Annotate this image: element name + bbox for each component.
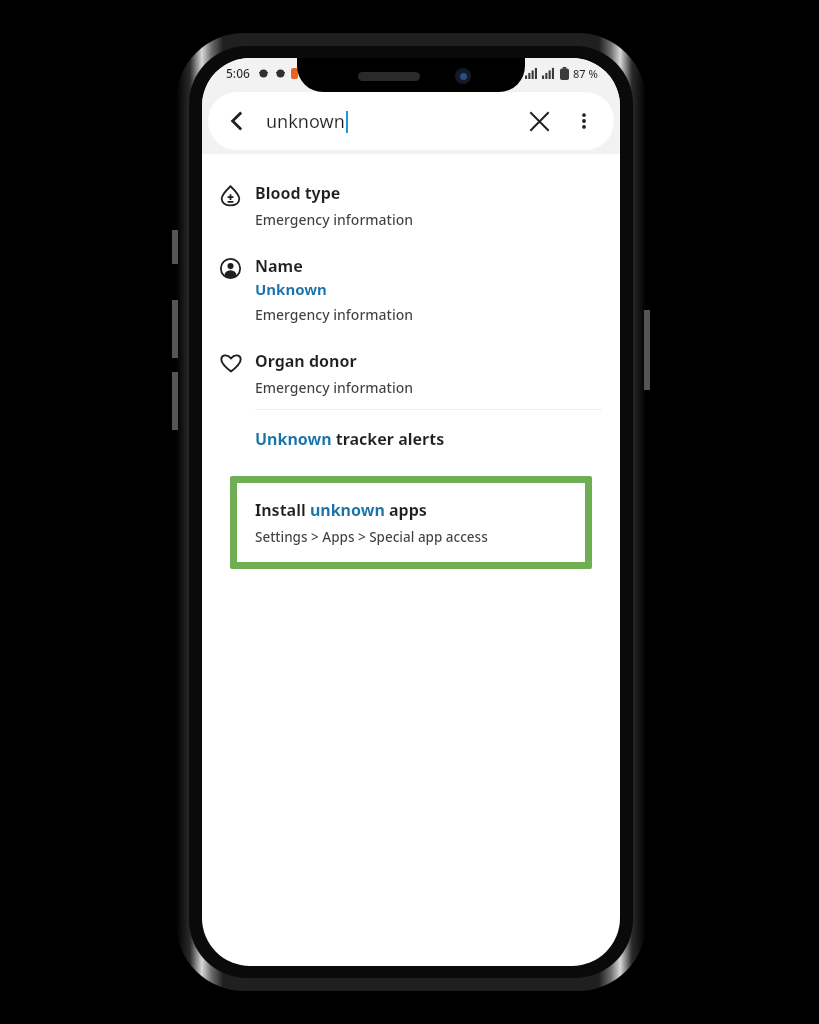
button[interactable]: Unknown tracker alerts <box>202 410 620 464</box>
staticText: Blood type <box>255 182 341 204</box>
staticText: Unknown <box>255 279 327 299</box>
button[interactable]: Install unknown apps <box>230 476 592 569</box>
staticText: Emergency information <box>255 210 414 229</box>
button[interactable]: Clear search <box>516 98 562 144</box>
staticText: Organ donor <box>255 350 357 372</box>
staticText: Emergency information <box>255 305 414 324</box>
staticText: 87 % <box>573 66 598 81</box>
staticText: Name <box>255 255 303 277</box>
staticText: Emergency information <box>255 378 414 397</box>
button[interactable]: Blood type <box>202 168 620 241</box>
button[interactable]: Name <box>202 241 620 336</box>
button[interactable]: More options <box>562 99 606 143</box>
staticText: Settings > Apps > Special app access <box>255 528 488 546</box>
button[interactable]: Back <box>214 98 260 144</box>
staticText: Install unknown apps <box>255 499 427 521</box>
staticText: 5:06 <box>226 65 250 81</box>
staticText: Unknown tracker alerts <box>255 428 445 450</box>
button[interactable]: Organ donor <box>202 336 620 410</box>
staticText: unknown <box>266 109 345 134</box>
